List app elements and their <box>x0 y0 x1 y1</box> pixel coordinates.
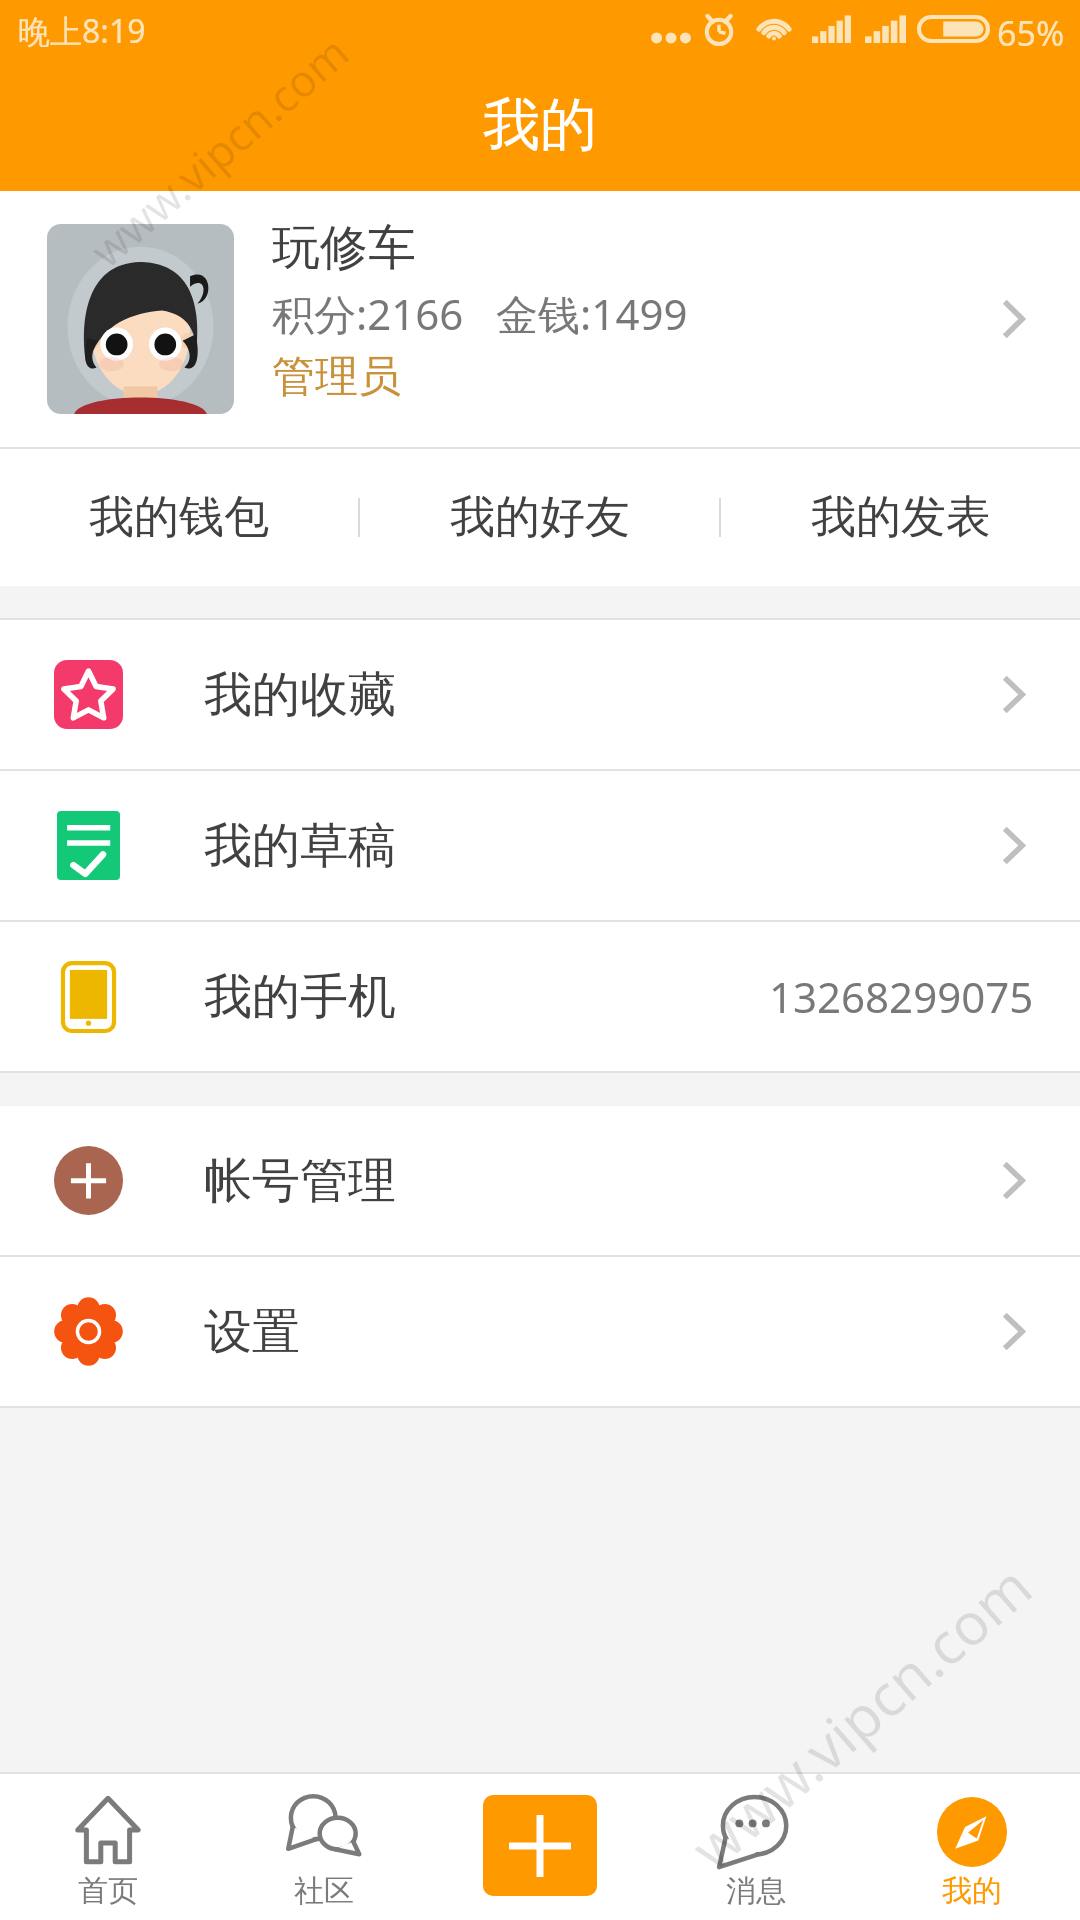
staticText: 首页 <box>78 1872 138 1910</box>
staticText: 管理员 <box>272 350 401 404</box>
button[interactable]: 设置 <box>0 1257 1080 1406</box>
staticText: 积分:2166 金钱:1499 <box>272 285 688 342</box>
button[interactable]: 我的好友 <box>360 449 719 586</box>
button[interactable]: 玩修车 <box>0 191 1080 447</box>
button[interactable]: 我的手机 <box>0 922 1080 1071</box>
button[interactable]: Add new post <box>432 1774 648 1920</box>
staticText: 我的 <box>483 89 597 161</box>
button[interactable]: 我的发表 <box>721 449 1080 586</box>
staticText: 我的发表 <box>811 489 991 546</box>
staticText: 玩修车 <box>272 218 416 278</box>
button[interactable]: 社区 <box>216 1774 432 1920</box>
staticText: 晚上8:19 <box>18 9 146 53</box>
button[interactable]: 我的钱包 <box>0 449 358 586</box>
staticText: 社区 <box>294 1872 354 1910</box>
staticText: www.vipcn.com <box>77 22 361 280</box>
staticText: 13268299075 <box>769 968 1034 1025</box>
button[interactable]: 消息 <box>648 1774 864 1920</box>
staticText: 我的草稿 <box>204 816 396 876</box>
staticText: 我的钱包 <box>89 489 269 546</box>
staticText: 我的手机 <box>204 967 396 1027</box>
staticText: 我的 <box>942 1872 1002 1910</box>
button[interactable]: 我的草稿 <box>0 771 1080 920</box>
button[interactable]: 我的 <box>864 1774 1080 1920</box>
staticText: 65% <box>997 10 1065 56</box>
staticText: 我的收藏 <box>204 665 396 725</box>
button[interactable]: 帐号管理 <box>0 1106 1080 1255</box>
staticText: 帐号管理 <box>204 1151 396 1211</box>
staticText: 设置 <box>204 1302 300 1362</box>
staticText: www.vipcn.com <box>673 1547 1048 1886</box>
button[interactable]: 我的收藏 <box>0 620 1080 769</box>
button[interactable]: 首页 <box>0 1774 216 1920</box>
staticText: 我的好友 <box>450 489 630 546</box>
staticText: 消息 <box>726 1872 786 1910</box>
